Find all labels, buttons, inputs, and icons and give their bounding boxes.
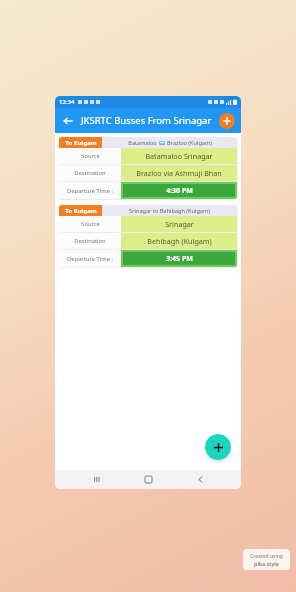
staticText: Behibagh (Kulgam) xyxy=(147,236,212,246)
button[interactable]: To Kulgam xyxy=(59,137,237,199)
staticText: JKSRTC Busses From Srinagar xyxy=(81,114,219,127)
staticText: Brazloo via Ashmuji Bhan xyxy=(136,168,222,178)
button[interactable]: Add bus xyxy=(205,434,231,460)
button[interactable]: To Kulgam xyxy=(59,205,237,267)
staticText: Departure Time : xyxy=(67,187,113,195)
staticText: Brazloo (Kulgam) xyxy=(167,139,212,147)
staticText: 12:34 xyxy=(59,98,75,106)
staticText: Batamaloo Srinagar xyxy=(145,151,213,161)
button[interactable]: Back xyxy=(59,112,77,130)
staticText: To Kulgam xyxy=(65,139,97,147)
button[interactable]: Home xyxy=(138,470,158,489)
staticText: Source xyxy=(81,220,100,228)
staticText: Created using xyxy=(250,553,283,560)
staticText: 4:30 PM xyxy=(166,186,193,196)
staticText: Departure Time : xyxy=(67,255,113,263)
staticText: Destination xyxy=(74,169,106,177)
button[interactable]: Add xyxy=(219,113,235,129)
button[interactable]: Recent apps xyxy=(87,470,107,489)
staticText: To Kulgam xyxy=(65,207,97,215)
staticText: Srinagar to Behibagh (Kulgam) xyxy=(129,207,210,215)
staticText: Source xyxy=(81,152,100,160)
staticText: 3:45 PM xyxy=(166,254,193,264)
staticText: Destination xyxy=(74,237,106,245)
button[interactable]: Back xyxy=(190,470,210,489)
staticText: Srinagar xyxy=(165,219,194,229)
staticText: pika.style xyxy=(254,560,279,567)
staticText: Batamaloo xyxy=(128,139,157,147)
